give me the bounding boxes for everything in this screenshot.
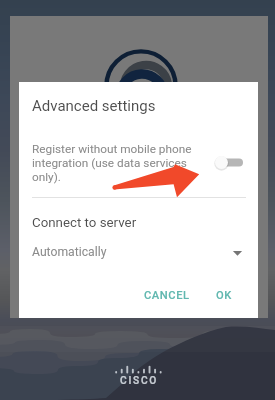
staticText: CISCO <box>120 375 159 387</box>
staticText: Advanced settings <box>32 97 156 115</box>
button[interactable]: CANCEL <box>136 284 198 307</box>
staticText: Automatically <box>32 245 107 259</box>
staticText: OK <box>216 289 232 302</box>
button[interactable]: OK <box>208 284 240 307</box>
staticText: CANCEL <box>144 289 190 302</box>
button[interactable]: Register without mobile phone integratio… <box>213 150 249 175</box>
button[interactable]: Automatically <box>32 242 246 268</box>
staticText: Connect to server <box>32 215 137 231</box>
staticText: Register without mobile phone integratio… <box>32 142 204 184</box>
